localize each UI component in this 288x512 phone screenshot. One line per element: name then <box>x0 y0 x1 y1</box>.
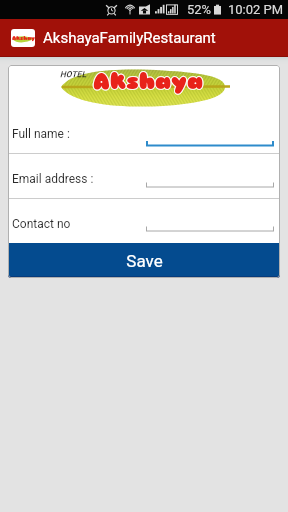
staticText: AkshayaFamilyRestaurant <box>43 29 216 47</box>
staticText: Contact no <box>12 217 71 231</box>
button[interactable]: Email address : <box>8 154 280 198</box>
staticText: 10:02 PM <box>228 2 284 17</box>
button[interactable]: Save <box>8 243 280 278</box>
staticText: Full name : <box>12 127 70 141</box>
staticText: Akshaya <box>94 67 204 95</box>
staticText: Akshaya <box>93 66 203 94</box>
staticText: Akshaya <box>93 68 203 96</box>
staticText: Akshaya <box>92 67 202 95</box>
other: App logo <box>11 29 35 47</box>
button[interactable]: Full name : <box>8 109 280 153</box>
staticText: Akshaya <box>93 67 203 95</box>
staticText: HOTEL <box>60 70 87 79</box>
staticText: Akshaya <box>12 35 35 42</box>
button[interactable]: Contact no <box>8 199 280 243</box>
staticText: 52% <box>187 2 212 17</box>
staticText: Email address : <box>12 172 94 186</box>
staticText: Save <box>126 251 163 271</box>
